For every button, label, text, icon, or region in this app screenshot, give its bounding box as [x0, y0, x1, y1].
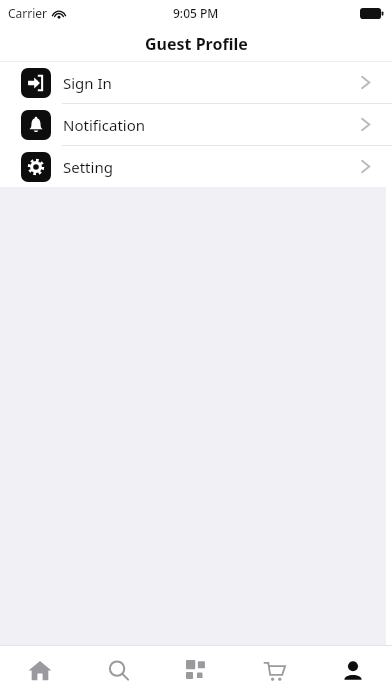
staticText: 9:05 PM [173, 5, 219, 21]
staticText: Guest Profile [145, 33, 248, 55]
button[interactable]: Sign In [0, 62, 392, 103]
staticText: Carrier [8, 5, 48, 21]
button[interactable]: Cart [236, 646, 314, 696]
button[interactable]: Categories [158, 646, 236, 696]
staticText: Setting [63, 157, 113, 177]
staticText: Sign In [63, 73, 112, 93]
button[interactable]: Setting [0, 146, 392, 187]
button[interactable]: Home [0, 646, 79, 696]
button[interactable]: Search [79, 646, 158, 696]
staticText: Notification [63, 115, 146, 135]
button[interactable]: Profile [314, 646, 392, 696]
button[interactable]: Notification [0, 104, 392, 145]
